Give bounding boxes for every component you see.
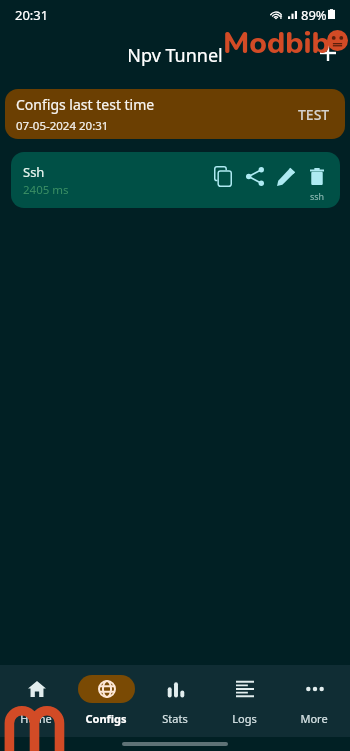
button[interactable]: Stats bbox=[142, 665, 208, 737]
button[interactable]: Add bbox=[312, 37, 344, 69]
staticText: 07-05-2024 20:31 bbox=[16, 118, 109, 134]
staticText: More bbox=[300, 711, 328, 726]
staticText: 20:31 bbox=[15, 6, 49, 24]
button[interactable]: Ssh bbox=[11, 152, 340, 208]
button[interactable]: Home bbox=[3, 665, 69, 737]
staticText: Stats bbox=[162, 711, 188, 726]
button[interactable]: Logs bbox=[211, 665, 277, 737]
button[interactable]: Delete bbox=[300, 154, 334, 204]
staticText: Logs bbox=[232, 711, 257, 726]
staticText: Configs bbox=[85, 711, 127, 726]
staticText: Home bbox=[20, 711, 52, 726]
button[interactable]: Copy bbox=[208, 161, 238, 191]
button[interactable]: Configs bbox=[73, 665, 139, 737]
staticText: ssh bbox=[310, 190, 325, 202]
button[interactable]: Share bbox=[240, 161, 270, 191]
staticText: Modbib bbox=[223, 23, 330, 64]
staticText: Ssh bbox=[23, 163, 45, 181]
button[interactable]: More bbox=[281, 665, 347, 737]
staticText: TEST bbox=[298, 105, 330, 124]
staticText: 89% bbox=[301, 6, 327, 24]
staticText: 2405 ms bbox=[23, 182, 69, 198]
button[interactable]: Edit bbox=[271, 161, 301, 191]
button[interactable]: Configs last test time bbox=[5, 89, 345, 139]
staticText: Npv Tunnel bbox=[0, 43, 350, 68]
staticText: Configs last test time bbox=[16, 95, 155, 114]
